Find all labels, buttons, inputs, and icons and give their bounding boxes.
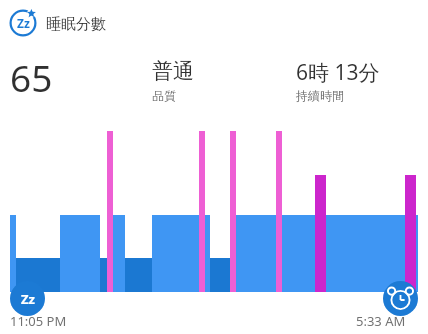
staticText: 持續時間 [296,88,344,103]
button[interactable]: Alarm 5:33 AM [383,281,418,316]
staticText: 品質 [152,88,176,103]
staticText: 睡眠分數 [46,15,106,34]
button[interactable]: Sleep score [9,9,37,37]
staticText: 11:05 PM [10,312,67,330]
staticText: 5:33 AM [356,312,406,330]
staticText: Zz [17,15,30,31]
button[interactable]: Sleep start 11:05 PM [10,281,45,316]
staticText: 6時 13分 [296,58,380,87]
staticText: Zz [21,290,35,308]
staticText: 普通 [152,58,194,84]
staticText: 65 [10,52,53,102]
